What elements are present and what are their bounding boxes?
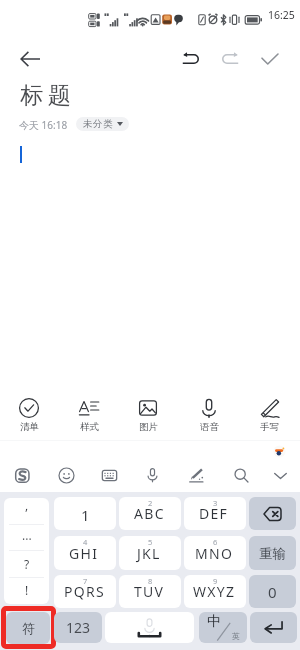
button[interactable]: ? [4,550,49,577]
staticText: WXYZ [193,582,236,601]
staticText: ! [25,582,29,598]
staticText: 符 [22,620,35,636]
button[interactable]: 重输 [249,536,296,570]
button[interactable]: ... [4,524,49,550]
button[interactable]: 9 [184,575,246,608]
staticText: 标题 [18,81,73,110]
button[interactable]: Hide keyboard [266,462,294,488]
staticText: MNO [195,544,234,563]
button[interactable]: 0 [249,575,296,608]
staticText: 8 [148,576,153,586]
button[interactable]: Sogou input [8,462,36,488]
staticText: 6 [213,537,218,547]
staticText: 语音 [200,421,219,433]
button[interactable]: Enter [250,612,297,643]
button[interactable]: 1 [54,497,116,530]
button[interactable]: 5 [119,536,181,570]
staticText: 今天 16:18 [19,118,68,132]
button[interactable]: Search [227,462,255,488]
button[interactable]: Emoji [52,462,80,488]
button[interactable]: 手写 [246,396,292,433]
button[interactable]: 图片 [125,396,171,433]
button[interactable]: Back [12,41,48,77]
button[interactable]: Voice input [138,462,166,488]
button[interactable]: 3 [184,497,246,530]
staticText: 16:25 [268,8,295,22]
button[interactable]: 语音 [186,396,232,433]
staticText: GHI [69,544,99,563]
button[interactable]: Handwriting [182,462,210,488]
staticText: PQRS [64,582,105,601]
button[interactable]: 123 [54,612,102,643]
staticText: 4 [83,537,88,547]
staticText: 0 [268,582,277,602]
staticText: TUV [134,582,165,601]
staticText: 清单 [20,421,39,433]
staticText: 未分类 [83,118,114,130]
button[interactable]: 4 [54,536,116,570]
staticText: 手写 [260,421,279,433]
staticText: DEF [199,504,229,523]
button[interactable]: 8 [119,575,181,608]
staticText: 样式 [80,421,99,433]
button[interactable]: 符 [6,612,50,644]
staticText: 图片 [139,421,158,433]
button[interactable]: Backspace [249,497,296,530]
button[interactable]: ! [4,577,49,604]
button[interactable]: Space [105,612,194,643]
staticText: ABC [134,504,165,523]
button[interactable]: 6 [184,536,246,570]
staticText: 3 [213,498,218,508]
staticText: 重输 [259,545,286,561]
staticText: 英 [232,631,240,641]
staticText: JKL [137,544,161,563]
staticText: 中 [207,613,221,631]
button[interactable]: Undo [174,43,206,75]
staticText: ? [24,556,30,572]
staticText: 9 [213,576,218,586]
button[interactable]: Keyboard layout [95,462,123,488]
button[interactable]: 2 [119,497,181,530]
button[interactable]: 7 [54,575,116,608]
button[interactable]: 未分类 [76,117,129,131]
staticText: 2 [148,498,153,508]
button[interactable]: , [4,498,49,524]
button[interactable]: 清单 [6,396,52,433]
staticText: 123 [66,618,91,637]
staticText: ... [22,527,32,543]
button[interactable]: Redo [214,43,246,75]
staticText: 7 [83,576,88,586]
staticText: , [25,498,29,513]
button[interactable]: Chinese / English [199,612,247,643]
button[interactable]: Done [254,43,286,75]
button[interactable]: 样式 [66,396,112,433]
staticText: 1 [81,505,90,525]
staticText: 5 [148,537,153,547]
